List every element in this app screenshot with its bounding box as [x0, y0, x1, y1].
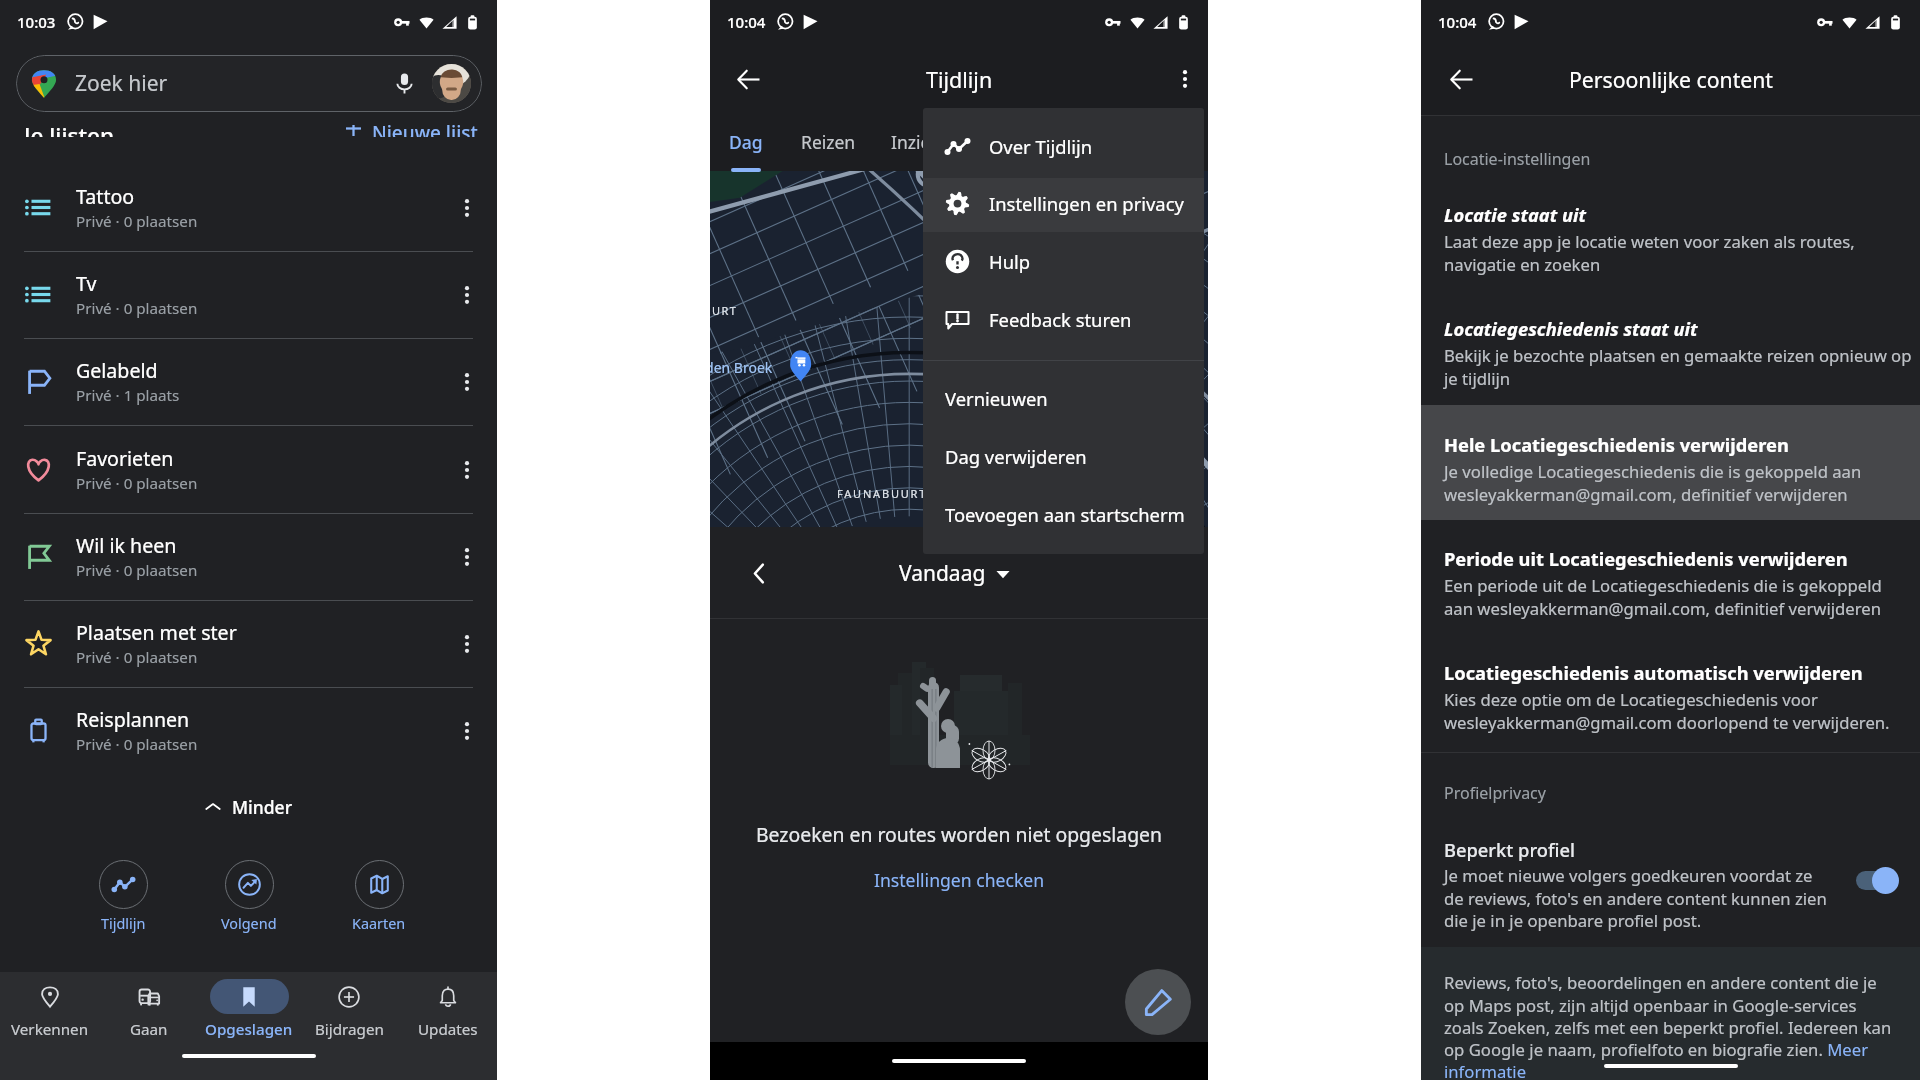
staticText: Instellingen checken	[874, 868, 1045, 892]
staticText: Volgend	[221, 914, 277, 934]
staticText: Een periode uit de Locatiegeschiedenis d…	[1444, 574, 1882, 620]
button[interactable]: Meer opties	[437, 687, 497, 774]
button[interactable]: Tattoo	[0, 164, 497, 251]
button[interactable]: Opgeslagen	[203, 972, 295, 1042]
button[interactable]: Meer opties	[437, 426, 497, 513]
staticText: Instellingen en privacy	[989, 191, 1184, 216]
button[interactable]: Gelabeld	[0, 338, 497, 425]
staticText: Laat deze app je locatie weten voor zake…	[1444, 230, 1855, 276]
button[interactable]: Inzichten	[874, 120, 984, 164]
staticText: Gelabeld	[76, 357, 158, 384]
button[interactable]: Vernieuwen	[923, 371, 1204, 425]
staticText: Updates	[418, 1019, 478, 1040]
staticText: Periode uit Locatiegeschiedenis verwijde…	[1444, 546, 1848, 571]
button[interactable]: Dag	[710, 120, 782, 164]
button[interactable]: Plaatsen met ster	[0, 600, 497, 687]
button[interactable]: Reizen	[782, 120, 874, 164]
button[interactable]: Over Tijdlijn	[923, 119, 1204, 173]
button[interactable]: Feedback sturen	[923, 292, 1204, 346]
button[interactable]: Nieuwe lijst	[345, 125, 478, 137]
staticText: Beperkt profiel	[1444, 837, 1575, 862]
staticText: Zoek hier	[75, 69, 168, 98]
staticText: Privé · 0 plaatsen	[76, 647, 198, 668]
button[interactable]: Tijdlijn	[83, 858, 163, 942]
button[interactable]: Vandaag	[899, 559, 1010, 588]
staticText: Bekijk je bezochte plaatsen en gemaakte …	[1444, 344, 1912, 390]
button[interactable]: Terug	[1439, 57, 1483, 101]
staticText: Je lijsten	[24, 125, 115, 137]
button[interactable]: Gaan	[103, 972, 195, 1042]
staticText: Persoonlijke content	[1569, 65, 1773, 94]
staticText: Privé · 0 plaatsen	[76, 298, 198, 319]
staticText: Dag verwijderen	[945, 444, 1087, 469]
button[interactable]: Bewerken	[1125, 969, 1191, 1035]
button[interactable]: Hulp	[923, 234, 1204, 288]
button[interactable]: Dag verwijderen	[923, 429, 1204, 483]
button[interactable]: Terug	[726, 57, 770, 101]
staticText: 10:03	[17, 12, 56, 32]
button[interactable]: Locatiegeschiedenis automatisch verwijde…	[1444, 660, 1920, 734]
button[interactable]: Instellingen en privacy	[923, 176, 1204, 230]
staticText: Bijdragen	[315, 1019, 384, 1040]
button[interactable]: Favorieten	[0, 426, 497, 513]
staticText: Feedback sturen	[989, 307, 1132, 332]
staticText: Locatie staat uit	[1444, 202, 1586, 227]
staticText: Minder	[232, 795, 293, 819]
button[interactable]: Locatiegeschiedenis staat uit	[1444, 316, 1920, 390]
staticText: Opgeslagen	[205, 1019, 293, 1040]
staticText: Reizen	[801, 130, 856, 154]
button[interactable]: Tv	[0, 251, 497, 338]
staticText: Hulp	[989, 249, 1031, 274]
staticText: Over Tijdlijn	[989, 134, 1093, 159]
staticText: Reisplannen	[76, 706, 190, 733]
button[interactable]: Beperkt profiel aan/uit	[1856, 871, 1896, 890]
staticText: Wil ik heen	[76, 532, 177, 559]
button[interactable]: Meer opties	[437, 600, 497, 687]
staticText: Vernieuwen	[945, 386, 1048, 411]
button[interactable]: Beperkt profiel	[1421, 830, 1920, 935]
button[interactable]: Locatie staat uit	[1444, 202, 1920, 276]
staticText: Privé · 0 plaatsen	[76, 560, 198, 581]
staticText: Tattoo	[76, 183, 135, 210]
staticText: Privé · 1 plaats	[76, 385, 180, 406]
staticText: Locatie-instellingen	[1444, 148, 1591, 170]
button[interactable]: Hele Locatiegeschiedenis verwijderen	[1444, 432, 1920, 506]
button[interactable]: Kaarten	[339, 858, 419, 942]
button[interactable]: Periode uit Locatiegeschiedenis verwijde…	[1444, 546, 1920, 620]
staticText: Je moet nieuwe volgers goedkeuren voorda…	[1444, 864, 1827, 932]
button[interactable]: Wil ik heen	[0, 513, 497, 600]
button[interactable]: Toevoegen aan startscherm	[923, 487, 1204, 541]
button[interactable]: Instellingen checken	[870, 864, 1049, 896]
button[interactable]: Vorige dag	[737, 551, 781, 595]
button[interactable]: Volgend	[209, 858, 289, 942]
staticText: Favorieten	[76, 445, 174, 472]
button[interactable]: Meer opties	[437, 338, 497, 425]
staticText: Tv	[76, 270, 97, 297]
staticText: 10:04	[1438, 12, 1477, 32]
staticText: Locatiegeschiedenis staat uit	[1444, 316, 1698, 341]
staticText: Je volledige Locatiegeschiedenis die is …	[1444, 460, 1862, 506]
staticText: Profielprivacy	[1444, 782, 1546, 804]
staticText: Verkennen	[11, 1019, 89, 1040]
staticText: Plaatsen met ster	[76, 619, 237, 646]
button[interactable]: Meer opties	[437, 251, 497, 338]
staticText: Inzichten	[891, 130, 967, 154]
button[interactable]: Meer opties	[437, 164, 497, 251]
staticText: 10:04	[727, 12, 766, 32]
button[interactable]: Meer opties	[437, 513, 497, 600]
staticText: Nieuwe lijst	[372, 125, 478, 137]
button[interactable]: Minder	[0, 789, 497, 825]
staticText: Gaan	[130, 1019, 168, 1040]
staticText: Locatiegeschiedenis automatisch verwijde…	[1444, 660, 1863, 685]
staticText: Privé · 0 plaatsen	[76, 734, 198, 755]
staticText: Toevoegen aan startscherm	[945, 502, 1185, 527]
button[interactable]: Verkennen	[4, 972, 96, 1042]
button[interactable]: Bijdragen	[303, 972, 395, 1042]
button[interactable]: Zoek hier	[16, 55, 482, 112]
staticText: Reviews, foto's, beoordelingen en andere…	[1444, 971, 1899, 1080]
button[interactable]: Reisplannen	[0, 687, 497, 774]
staticText: Kaarten	[352, 914, 406, 934]
button[interactable]: Meer opties	[1163, 57, 1207, 101]
button[interactable]: Updates	[402, 972, 494, 1042]
staticText: Tijdlijn	[926, 65, 993, 94]
